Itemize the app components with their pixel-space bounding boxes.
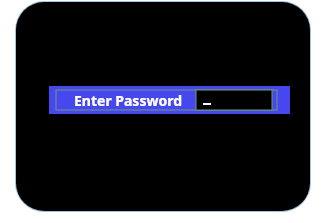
staticText: Enter Password — [69, 91, 187, 109]
button[interactable]: Enter Password field — [49, 86, 290, 114]
